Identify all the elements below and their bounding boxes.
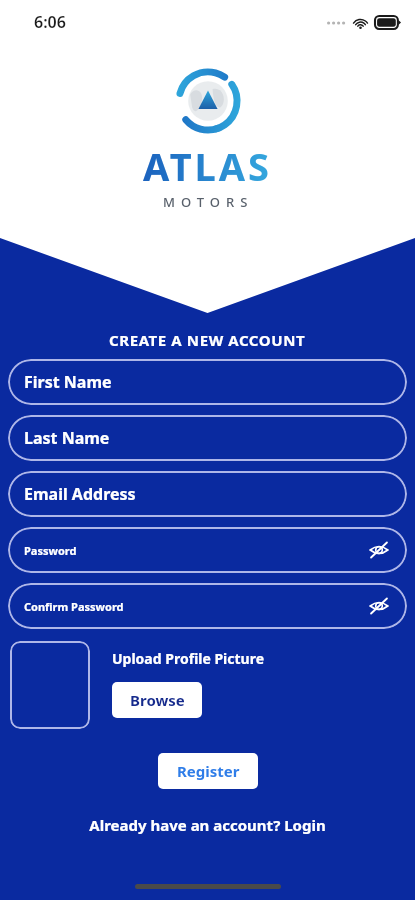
button[interactable]: First Name <box>8 359 407 405</box>
button[interactable]: Browse <box>112 682 202 718</box>
button[interactable]: Register <box>158 753 258 789</box>
staticText: CREATE A NEW ACCOUNT <box>109 330 306 350</box>
button[interactable]: Toggle password visibility <box>365 592 393 620</box>
staticText: Browse <box>130 690 185 710</box>
staticText: Email Address <box>24 483 136 505</box>
staticText: Already have an account? Login <box>89 815 326 835</box>
button[interactable]: Email Address <box>8 471 407 517</box>
button[interactable]: Password <box>8 527 407 573</box>
staticText: Upload Profile Picture <box>112 649 265 668</box>
button[interactable]: Toggle password visibility <box>365 536 393 564</box>
staticText: Confirm Password <box>24 599 124 614</box>
staticText: Password <box>24 543 77 558</box>
button[interactable]: Last Name <box>8 415 407 461</box>
button[interactable]: Confirm Password <box>8 583 407 629</box>
staticText: 6:06 <box>34 11 66 33</box>
staticText: Register <box>177 761 240 781</box>
button[interactable]: Already have an account? Login <box>81 811 334 839</box>
staticText: Last Name <box>24 427 110 449</box>
staticText: ATLAS <box>143 140 273 192</box>
staticText: First Name <box>24 371 112 393</box>
button[interactable]: Profile picture preview <box>10 641 90 729</box>
staticText: MOTORS <box>163 193 254 211</box>
